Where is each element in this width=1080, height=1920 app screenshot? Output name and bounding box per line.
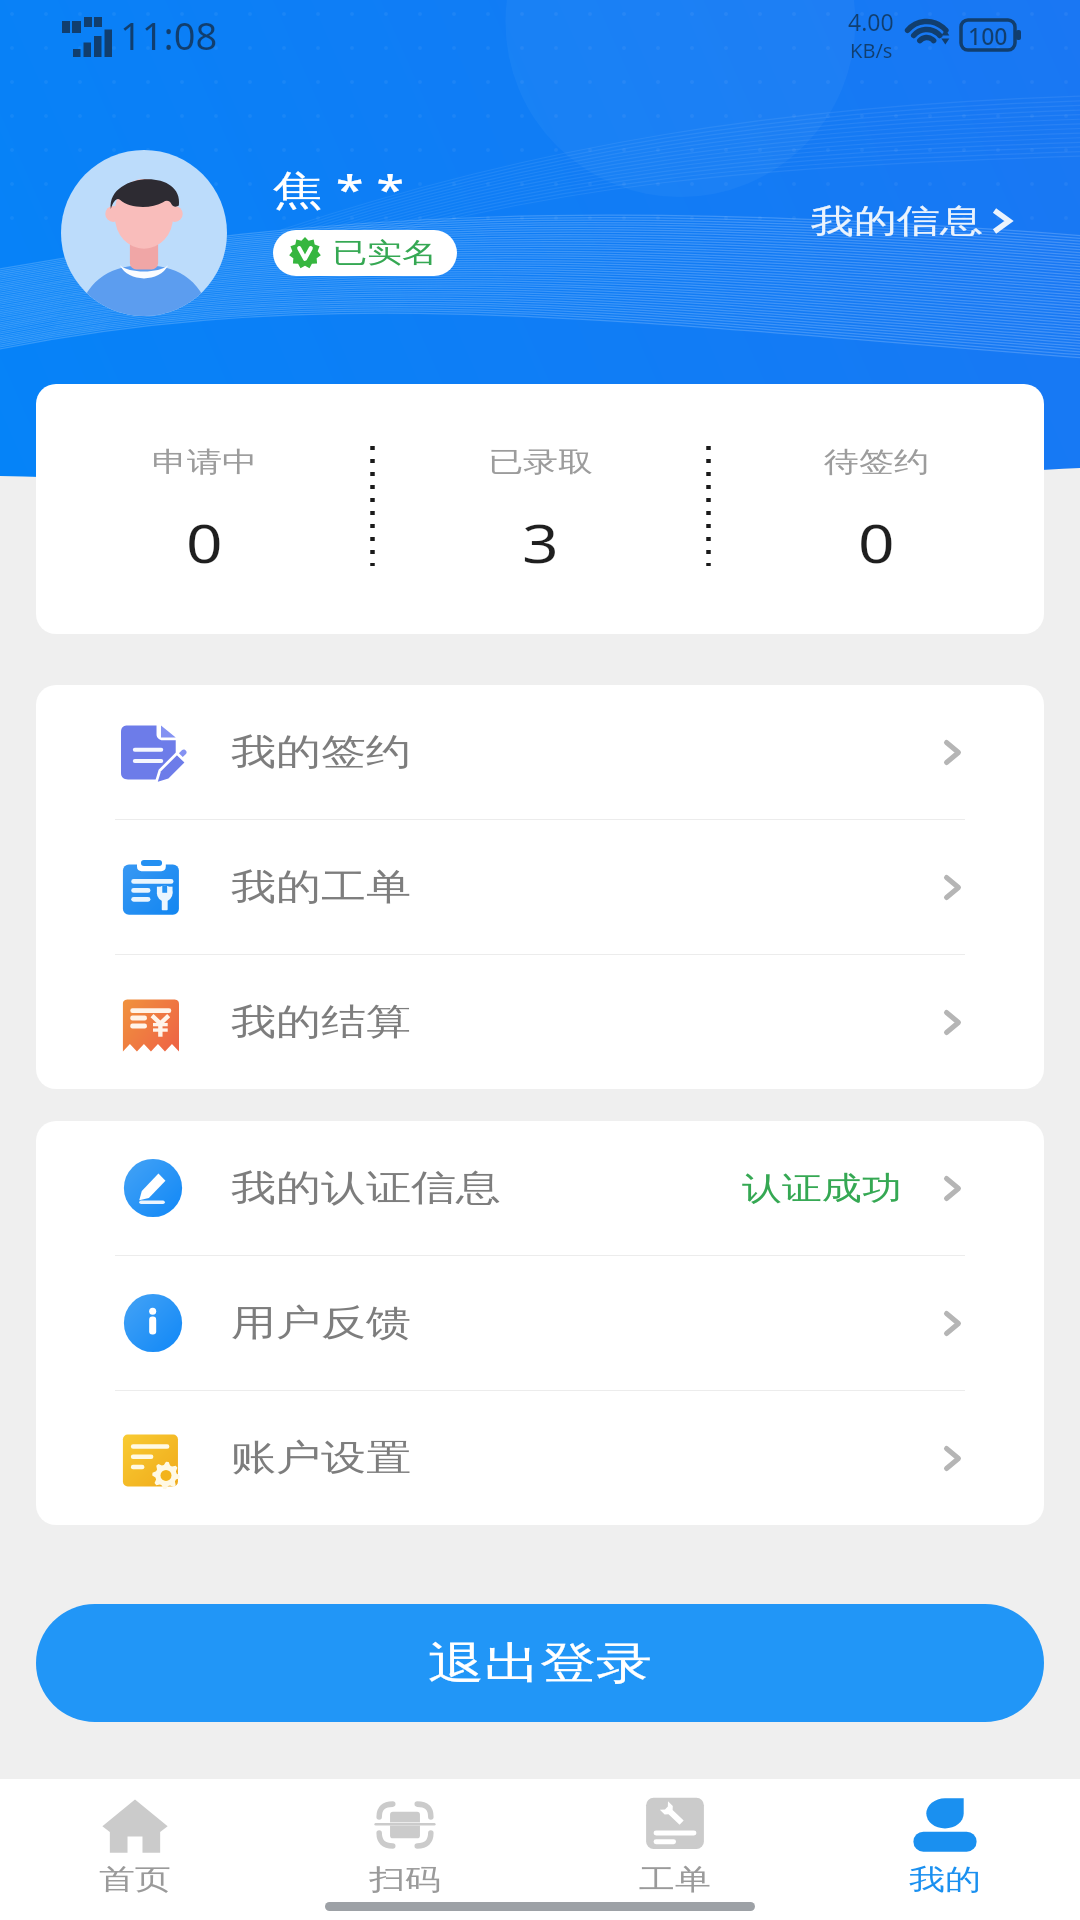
- button[interactable]: 待签约: [709, 384, 1044, 634]
- staticText: 我的: [909, 1862, 981, 1897]
- staticText: 11:08: [120, 9, 218, 61]
- button[interactable]: 我的认证信息: [36, 1121, 1044, 1255]
- staticText: 100: [968, 20, 1008, 51]
- button[interactable]: 我的信息: [791, 186, 1080, 256]
- staticText: 0: [858, 506, 895, 579]
- button[interactable]: 已录取: [373, 384, 708, 634]
- button[interactable]: Work orders: [540, 1779, 810, 1920]
- staticText: 我的认证信息: [231, 1166, 501, 1211]
- staticText: 我的结算: [231, 1000, 411, 1045]
- button[interactable]: 账户设置: [36, 1391, 1044, 1525]
- staticText: 我的信息: [811, 200, 983, 241]
- staticText: 4.00: [848, 6, 894, 37]
- staticText: 申请中: [152, 445, 257, 479]
- button[interactable]: 我的工单: [36, 820, 1044, 954]
- button[interactable]: Home: [0, 1779, 270, 1920]
- button[interactable]: 我的签约: [36, 685, 1044, 819]
- staticText: 用户反馈: [231, 1301, 411, 1346]
- staticText: 已实名: [332, 236, 437, 270]
- button[interactable]: 申请中: [36, 384, 372, 634]
- staticText: 我的签约: [231, 730, 411, 775]
- staticText: 3: [522, 506, 559, 579]
- staticText: KB/s: [850, 37, 893, 64]
- staticText: 认证成功: [742, 1168, 902, 1208]
- staticText: 账户设置: [231, 1436, 411, 1481]
- staticText: 首页: [99, 1862, 171, 1897]
- staticText: 退出登录: [428, 1636, 652, 1691]
- button[interactable]: Scan: [270, 1779, 540, 1920]
- staticText: 待签约: [824, 445, 929, 479]
- button[interactable]: 退出登录: [36, 1604, 1044, 1722]
- staticText: 我的工单: [231, 865, 411, 910]
- staticText: 工单: [639, 1862, 711, 1897]
- staticText: 焦 * *: [273, 162, 404, 216]
- button[interactable]: 用户反馈: [36, 1256, 1044, 1390]
- staticText: 扫码: [369, 1862, 441, 1897]
- staticText: 已录取: [488, 445, 593, 479]
- button[interactable]: 我的结算: [36, 955, 1044, 1089]
- staticText: 0: [186, 506, 223, 579]
- button[interactable]: Mine: [810, 1779, 1080, 1920]
